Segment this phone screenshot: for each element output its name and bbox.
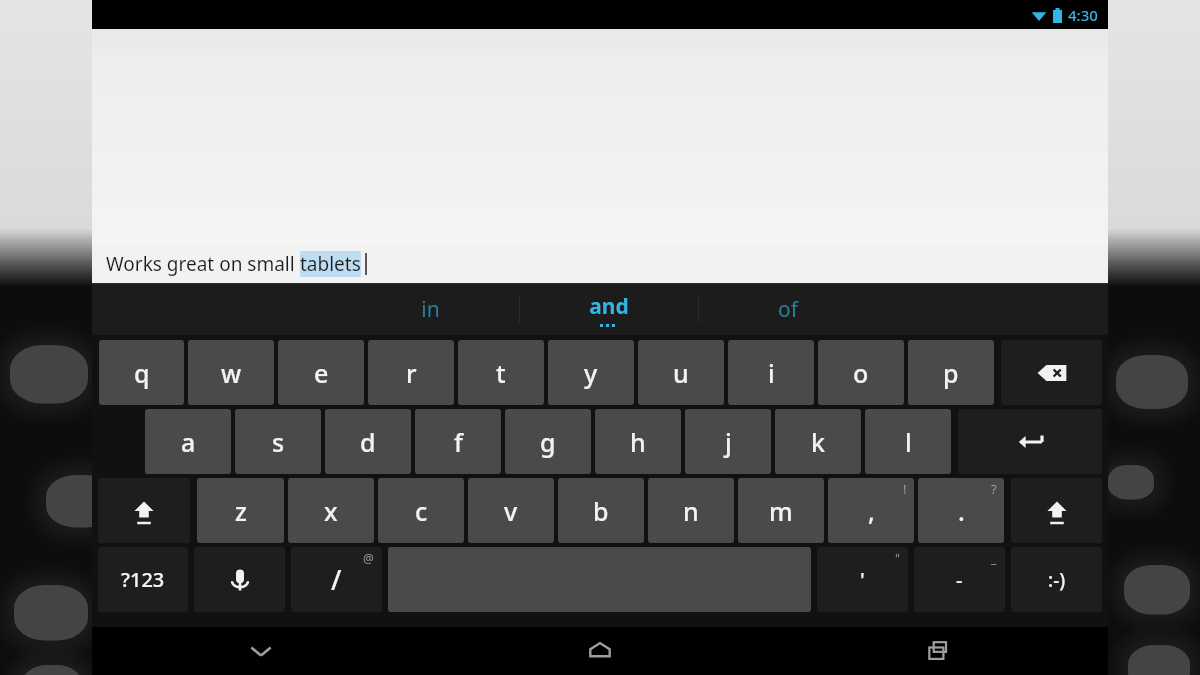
button[interactable]: w xyxy=(188,340,274,405)
staticText: m xyxy=(769,494,793,528)
button[interactable]: f xyxy=(415,409,501,474)
button[interactable]: ' xyxy=(817,547,908,612)
staticText: ' xyxy=(860,566,865,593)
staticText: p xyxy=(943,356,959,390)
button[interactable]: in xyxy=(341,283,519,335)
button[interactable]: b xyxy=(558,478,644,543)
button[interactable]: j xyxy=(685,409,771,474)
button[interactable]: x xyxy=(288,478,374,543)
staticText: w xyxy=(221,356,242,390)
staticText: z xyxy=(235,494,247,528)
staticText: and xyxy=(589,292,629,321)
button[interactable]: of xyxy=(699,283,877,335)
staticText: n xyxy=(683,494,699,528)
staticText: f xyxy=(454,425,463,459)
button[interactable]: Voice input xyxy=(194,547,285,612)
staticText: b xyxy=(593,494,609,528)
staticText: o xyxy=(853,356,869,390)
staticText: s xyxy=(272,425,285,459)
button[interactable]: n xyxy=(648,478,734,543)
staticText: v xyxy=(504,494,518,528)
button[interactable]: i xyxy=(728,340,814,405)
staticText: 4:30 xyxy=(1068,5,1098,25)
staticText: Works great on small xyxy=(106,251,300,277)
button[interactable]: m xyxy=(738,478,824,543)
button[interactable]: u xyxy=(638,340,724,405)
button[interactable]: s xyxy=(235,409,321,474)
staticText: tablets xyxy=(300,251,361,277)
button[interactable]: l xyxy=(865,409,951,474)
staticText: g xyxy=(540,425,556,459)
staticText: c xyxy=(415,494,428,528)
staticText: d xyxy=(360,425,376,459)
button[interactable]: and xyxy=(520,283,698,335)
button[interactable]: . xyxy=(918,478,1004,543)
button[interactable]: y xyxy=(548,340,634,405)
staticText: _ xyxy=(991,550,997,566)
staticText: . xyxy=(958,494,965,528)
button[interactable]: g xyxy=(505,409,591,474)
button[interactable]: Home xyxy=(430,627,769,675)
staticText: i xyxy=(768,356,775,390)
button[interactable]: c xyxy=(378,478,464,543)
button[interactable]: :-) xyxy=(1011,547,1102,612)
button[interactable]: / xyxy=(291,547,382,612)
staticText: in xyxy=(421,295,440,324)
staticText: h xyxy=(630,425,646,459)
staticText: j xyxy=(725,425,732,459)
button[interactable]: t xyxy=(458,340,544,405)
button[interactable]: Enter xyxy=(958,409,1102,474)
staticText: :-) xyxy=(1048,567,1066,593)
button[interactable]: , xyxy=(828,478,914,543)
staticText: q xyxy=(134,356,150,390)
staticText: - xyxy=(956,566,963,593)
button[interactable]: a xyxy=(145,409,231,474)
staticText: ! xyxy=(903,480,907,498)
button[interactable]: e xyxy=(278,340,364,405)
button[interactable]: Shift xyxy=(98,478,190,543)
button[interactable]: Delete xyxy=(1001,340,1102,405)
staticText: a xyxy=(181,425,196,459)
staticText: y xyxy=(584,356,598,390)
staticText: u xyxy=(673,356,689,390)
button[interactable]: Shift xyxy=(1011,478,1102,543)
button[interactable]: Hide keyboard xyxy=(92,627,430,675)
staticText: e xyxy=(314,356,329,390)
staticText: " xyxy=(895,550,900,566)
staticText: l xyxy=(905,425,912,459)
button[interactable]: r xyxy=(368,340,454,405)
staticText: @ xyxy=(363,550,374,566)
button[interactable]: h xyxy=(595,409,681,474)
staticText: ?123 xyxy=(121,566,165,593)
button[interactable]: - xyxy=(914,547,1005,612)
staticText: / xyxy=(331,561,342,598)
button[interactable]: o xyxy=(818,340,904,405)
staticText: of xyxy=(778,295,798,324)
button[interactable]: ?123 xyxy=(98,547,188,612)
staticText: t xyxy=(496,356,506,390)
staticText: r xyxy=(406,356,417,390)
staticText: ? xyxy=(991,480,997,498)
staticText: x xyxy=(324,494,338,528)
button[interactable]: q xyxy=(99,340,184,405)
button[interactable]: Works great on small xyxy=(92,245,1108,283)
button[interactable]: Recent apps xyxy=(769,627,1108,675)
button[interactable]: p xyxy=(908,340,994,405)
staticText: , xyxy=(868,494,875,528)
button[interactable]: k xyxy=(775,409,861,474)
button[interactable]: d xyxy=(325,409,411,474)
button[interactable]: v xyxy=(468,478,554,543)
button[interactable]: z xyxy=(197,478,284,543)
staticText: k xyxy=(811,425,825,459)
